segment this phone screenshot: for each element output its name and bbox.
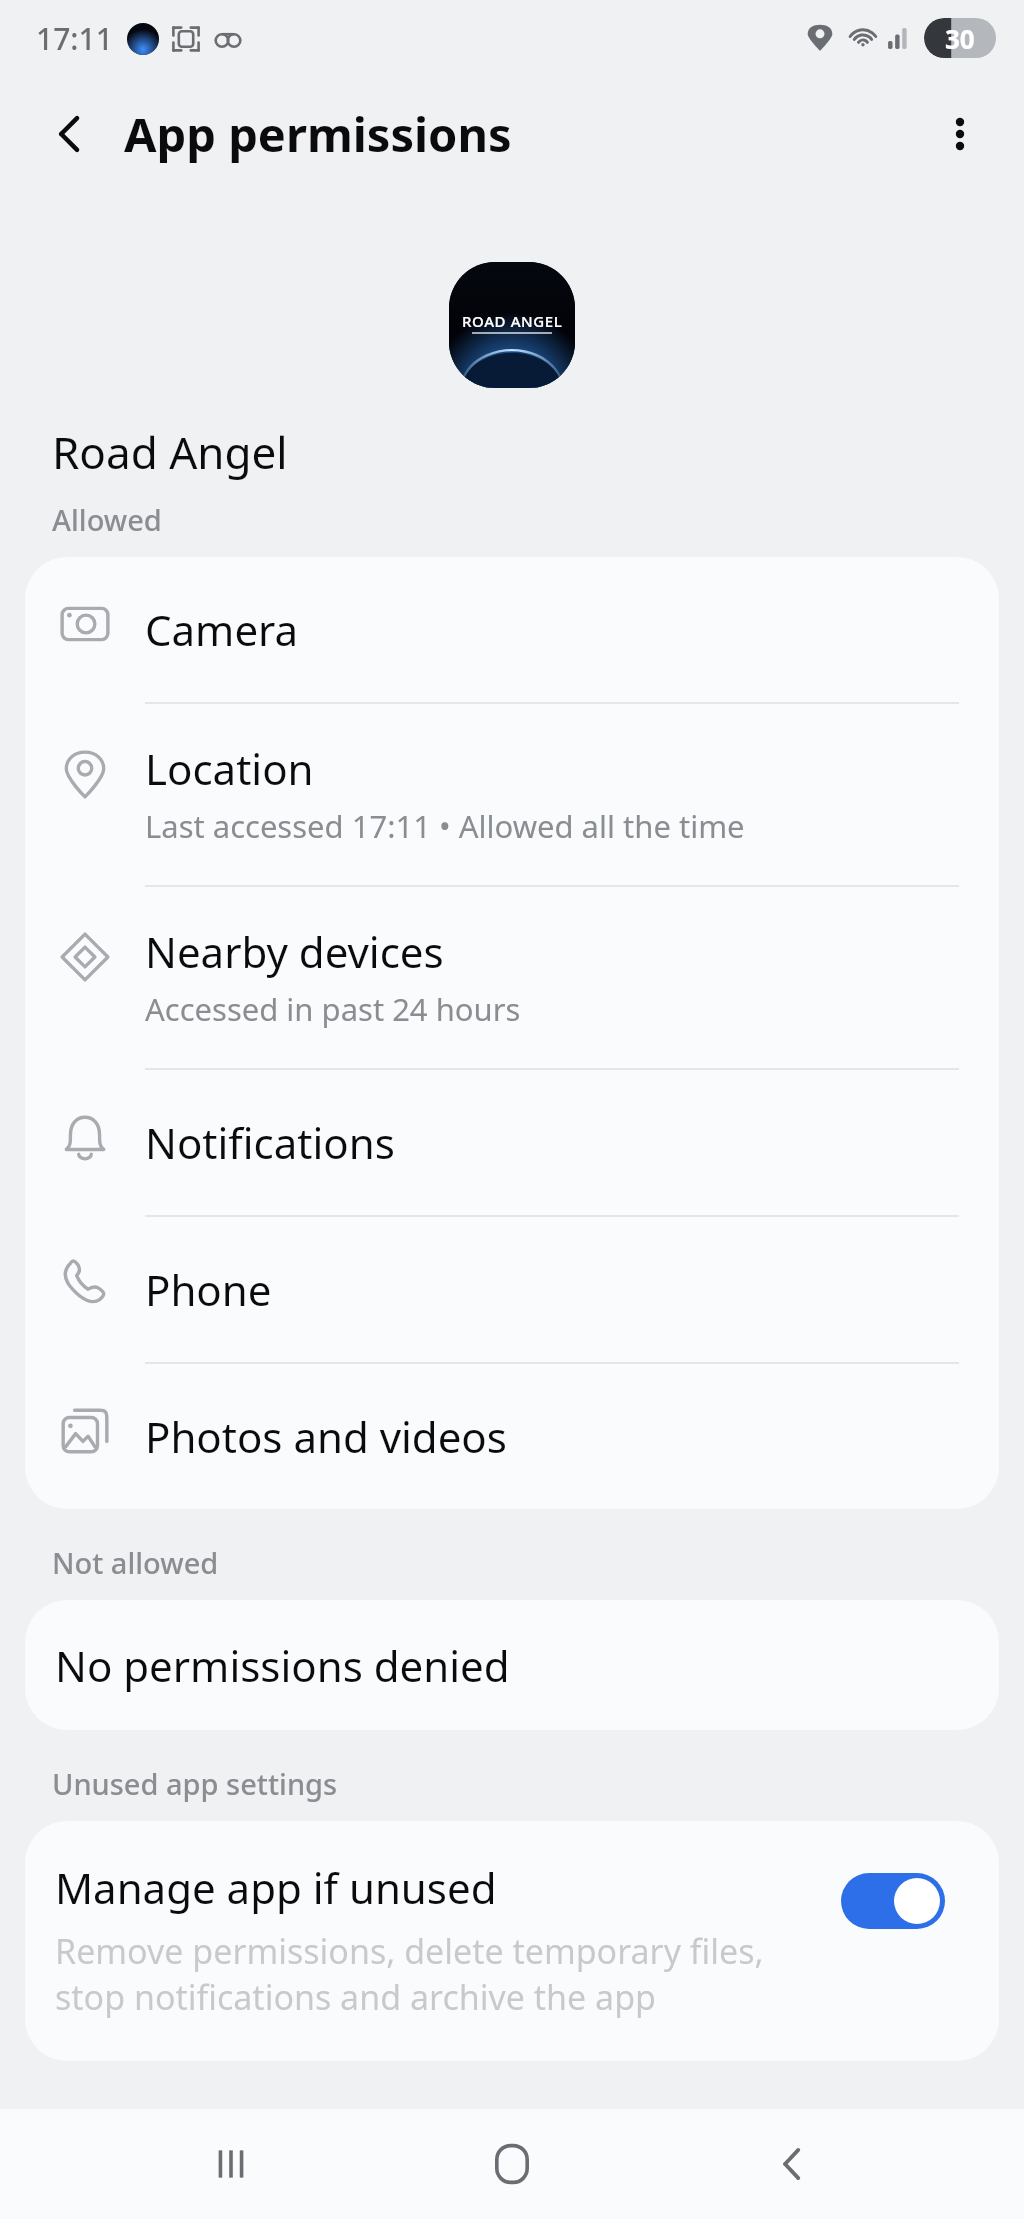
button[interactable]: Notifications	[25, 1070, 999, 1217]
staticText: Last accessed 17:11 • Allowed all the ti…	[145, 805, 745, 847]
staticText: Phone	[145, 1261, 272, 1318]
button[interactable]: Back	[34, 98, 106, 170]
staticText: Road Angel	[52, 422, 288, 482]
staticText: Remove permissions, delete temporary fil…	[55, 1928, 799, 2020]
button[interactable]: Manage app if unused toggle	[841, 1873, 945, 1929]
staticText: Manage app if unused	[55, 1859, 497, 1916]
staticText: Unused app settings	[52, 1764, 338, 1803]
button[interactable]: Location	[25, 704, 999, 887]
staticText: 30	[945, 21, 975, 56]
staticText: 17:11	[36, 18, 113, 59]
button[interactable]: Camera	[25, 557, 999, 704]
button[interactable]: Back	[743, 2114, 843, 2214]
button[interactable]: Phone	[25, 1217, 999, 1364]
staticText: Photos and videos	[145, 1408, 507, 1465]
staticText: Not allowed	[52, 1543, 219, 1582]
staticText: Location	[145, 740, 314, 797]
button[interactable]: More options	[924, 98, 996, 170]
staticText: Nearby devices	[145, 923, 444, 980]
button[interactable]: Recent apps	[181, 2114, 281, 2214]
button[interactable]: Home	[462, 2114, 562, 2214]
staticText: Camera	[145, 601, 299, 658]
button[interactable]: Manage app if unused	[25, 1821, 999, 2061]
button[interactable]: Photos and videos	[25, 1364, 999, 1509]
staticText: ROAD ANGEL	[462, 311, 563, 331]
staticText: Allowed	[52, 500, 162, 539]
staticText: No permissions denied	[55, 1637, 510, 1694]
staticText: App permissions	[124, 102, 512, 166]
staticText: Accessed in past 24 hours	[145, 988, 521, 1030]
staticText: Notifications	[145, 1114, 395, 1171]
button[interactable]: No permissions denied	[25, 1600, 999, 1730]
button[interactable]: Nearby devices	[25, 887, 999, 1070]
